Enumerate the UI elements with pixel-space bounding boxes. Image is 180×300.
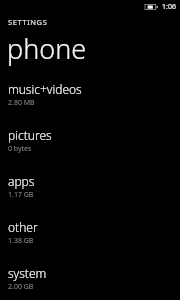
other: Battery bbox=[145, 3, 158, 11]
staticText: 1.38 GB bbox=[8, 236, 34, 246]
staticText: phone bbox=[7, 30, 87, 67]
staticText: SETTINGS bbox=[8, 17, 48, 27]
button[interactable]: system bbox=[0, 260, 180, 297]
button[interactable]: apps bbox=[0, 168, 180, 205]
staticText: 0 bytes bbox=[8, 144, 32, 154]
staticText: 2.00 GB bbox=[8, 282, 34, 292]
staticText: 2.80 MB bbox=[8, 98, 35, 108]
staticText: system bbox=[8, 265, 47, 281]
staticText: apps bbox=[8, 173, 35, 189]
staticText: pictures bbox=[8, 127, 52, 143]
button[interactable]: other bbox=[0, 214, 180, 251]
button[interactable]: pictures bbox=[0, 122, 180, 159]
button[interactable]: music+videos bbox=[0, 76, 180, 113]
staticText: other bbox=[8, 219, 38, 235]
button[interactable]: SETTINGS bbox=[0, 17, 180, 27]
staticText: 1:06 bbox=[162, 2, 176, 12]
staticText: 1.17 GB bbox=[8, 190, 34, 200]
staticText: music+videos bbox=[8, 81, 82, 97]
